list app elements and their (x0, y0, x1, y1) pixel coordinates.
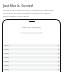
staticText: Label (4, 60, 9, 63)
staticText: Label (4, 64, 9, 67)
staticText: Label (4, 44, 9, 47)
button[interactable]: Label (3, 56, 60, 60)
button[interactable]: Label (3, 64, 60, 68)
staticText: Label (4, 56, 9, 59)
button[interactable]: Label (3, 44, 60, 48)
button[interactable]: Label (3, 48, 60, 52)
button[interactable]: Label (3, 52, 60, 56)
button[interactable]: Label (3, 68, 60, 72)
staticText: Just like it. Curved (3, 3, 33, 7)
staticText: Label (4, 48, 9, 51)
staticText: Sign in to continue (3, 26, 60, 29)
staticText: Label (4, 52, 9, 55)
staticText: Label (4, 68, 9, 71)
staticText: Lorem ipsum dolor sit amet, consectetur … (3, 9, 54, 18)
button[interactable]: Label (3, 60, 60, 64)
